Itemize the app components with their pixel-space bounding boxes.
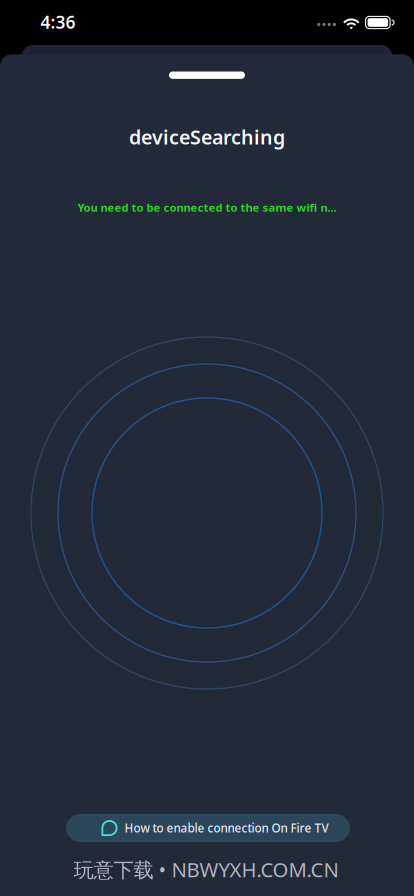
staticText: How to enable connection On Fire TV — [124, 820, 328, 836]
staticText: deviceSearching — [129, 124, 285, 150]
staticText: You need to be connected to the same wif… — [77, 200, 336, 215]
staticText: 4:36 — [40, 10, 75, 33]
button[interactable]: How to enable connection On Fire TV — [66, 814, 350, 842]
staticText: 玩意下载 • NBWYXH.COM.CN — [73, 856, 338, 883]
